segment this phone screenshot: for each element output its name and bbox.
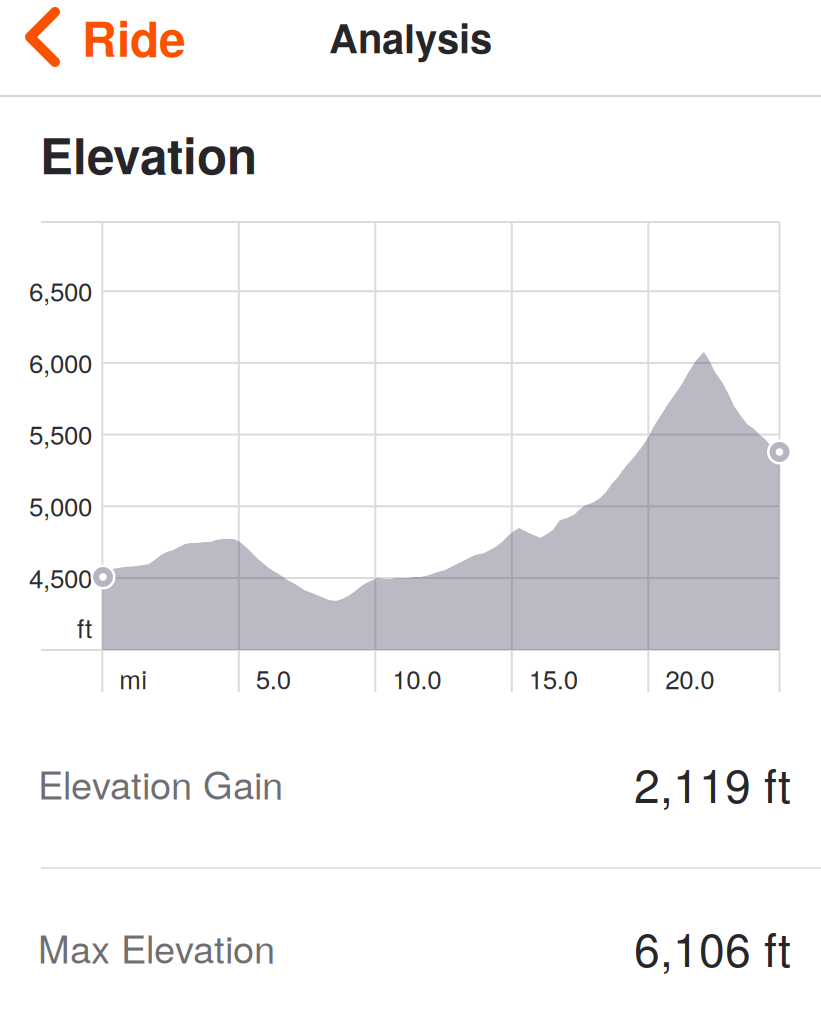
staticText: 5,000 (29, 487, 92, 524)
staticText: 6,106 ft (634, 914, 791, 980)
button[interactable]: Max Elevation (0, 864, 821, 1023)
staticText: mi (119, 659, 147, 697)
staticText: 4,500 (29, 558, 92, 596)
staticText: 5.0 (256, 659, 291, 697)
staticText: Elevation Gain (38, 756, 283, 810)
staticText: ft (77, 608, 92, 646)
button[interactable]: Elevation Gain (0, 700, 821, 866)
staticText: Elevation (40, 119, 257, 189)
staticText: Analysis (329, 8, 492, 66)
staticText: 5,500 (29, 415, 92, 452)
staticText: Ride (82, 3, 186, 71)
staticText: Max Elevation (38, 920, 275, 974)
staticText: 6,500 (29, 272, 92, 309)
staticText: 2,119 ft (634, 750, 791, 816)
staticText: 6,000 (29, 343, 92, 380)
staticText: 20.0 (665, 659, 714, 697)
staticText: 10.0 (392, 659, 441, 697)
button[interactable]: Ride (0, 0, 186, 81)
staticText: 15.0 (529, 659, 578, 697)
